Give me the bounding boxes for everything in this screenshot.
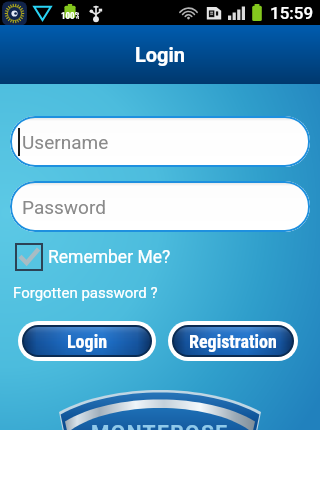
button[interactable]: Registration — [174, 327, 292, 355]
button[interactable]: Forgotten password ? — [13, 284, 158, 302]
staticText: Login — [135, 43, 186, 66]
staticText: Forgotten password ? — [13, 284, 158, 302]
staticText: Password — [22, 196, 106, 218]
staticText: 15:59 — [270, 3, 314, 23]
button[interactable]: Username — [10, 116, 310, 167]
button[interactable]: Password — [10, 181, 310, 232]
staticText: 100% — [61, 11, 79, 22]
staticText: Login — [67, 331, 108, 352]
staticText: Remember Me? — [48, 247, 171, 268]
button[interactable]: Remember Me? — [15, 243, 171, 271]
button[interactable]: Login — [24, 327, 150, 355]
staticText: MONTEROSE — [91, 421, 229, 446]
staticText: Registration — [189, 331, 277, 352]
staticText: Username — [22, 131, 109, 153]
